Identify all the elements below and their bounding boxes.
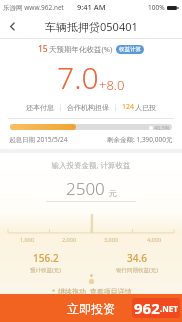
staticText: 天预期年化收益(%) [49, 44, 113, 54]
staticText: 乐游网 www.962.net [3, 3, 64, 12]
staticText: 收益计算 [119, 46, 141, 53]
staticText: .NET [160, 303, 178, 314]
staticText: 合作机构担保 [67, 103, 109, 112]
staticText: 预计收益(元) [30, 266, 61, 274]
staticText: 剩余金额: 1,390,000元 [107, 135, 173, 144]
staticText: 人已投 [135, 103, 156, 112]
staticText: 7.0 [57, 57, 99, 98]
staticText: 继续拖动 查看项目详情 [58, 287, 132, 294]
staticText: 起息日期 2015/5/24 [9, 135, 68, 144]
button[interactable]: 返回 [0, 14, 24, 38]
staticText: 元 [109, 188, 117, 198]
staticText: 2,000 [62, 236, 77, 243]
staticText: +8.0 [99, 76, 125, 94]
staticText: 9:41 AM [77, 2, 106, 12]
staticText: 100% [148, 3, 165, 12]
staticText: 156.2 [33, 251, 59, 265]
staticText: 40.5% [154, 124, 170, 131]
staticText: 962 [134, 298, 160, 318]
staticText: 1,000 [20, 236, 35, 243]
staticText: 34.6 [127, 251, 147, 265]
staticText: 4,000 [147, 236, 162, 243]
staticText: 还本付息 [26, 103, 54, 112]
staticText: 3,000 [104, 236, 119, 243]
staticText: 15 [38, 43, 48, 55]
staticText: 银行同期收益(元) [116, 266, 158, 274]
staticText: 车辆抵押贷050401 [45, 19, 138, 34]
button[interactable]: 收益计算 [116, 45, 144, 54]
button[interactable]: 立即投资 [0, 294, 182, 322]
staticText: 2500 [66, 177, 105, 200]
staticText: 124 [122, 102, 135, 112]
staticText: 立即投资 [67, 301, 115, 316]
staticText: 输入投资金额, 计算收益 [0, 160, 182, 170]
